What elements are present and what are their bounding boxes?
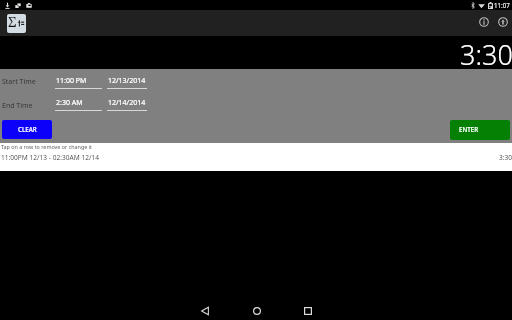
staticText: 12/13/2014 — [108, 76, 146, 86]
button[interactable]: Sum Time app icon — [7, 14, 26, 33]
staticText: 12/14/2014 — [108, 98, 146, 108]
staticText: 3:30 — [460, 36, 512, 69]
button[interactable]: 2:30 AM — [55, 96, 102, 112]
staticText: End Time — [2, 101, 33, 111]
staticText: 11:00PM 12/13 - 02:30AM 12/14 — [1, 153, 99, 162]
staticText: 11:07 — [494, 1, 510, 9]
button[interactable]: CLEAR — [2, 120, 52, 139]
staticText: Start Time — [2, 77, 36, 87]
staticText: Σ — [8, 14, 17, 31]
button[interactable]: Home — [242, 296, 271, 320]
button[interactable]: ENTER — [450, 120, 510, 140]
button[interactable]: 11:00PM 12/13 - 02:30AM 12/14 — [0, 151, 512, 164]
button[interactable]: 12/13/2014 — [107, 74, 147, 90]
staticText: Tap on a row to remove or change it — [1, 143, 93, 150]
button[interactable]: Recent apps — [293, 296, 322, 320]
staticText: 3:30 — [499, 153, 512, 162]
staticText: 11:00 PM — [56, 76, 87, 86]
staticText: CLEAR — [18, 125, 37, 133]
staticText: 2:30 AM — [56, 98, 83, 108]
button[interactable]: Info — [472, 10, 496, 34]
button[interactable]: Back — [190, 296, 219, 320]
button[interactable]: 12/14/2014 — [107, 96, 147, 112]
staticText: ENTER — [459, 125, 479, 133]
button[interactable]: 11:00 PM — [55, 74, 102, 90]
button[interactable]: Help — [491, 10, 512, 34]
